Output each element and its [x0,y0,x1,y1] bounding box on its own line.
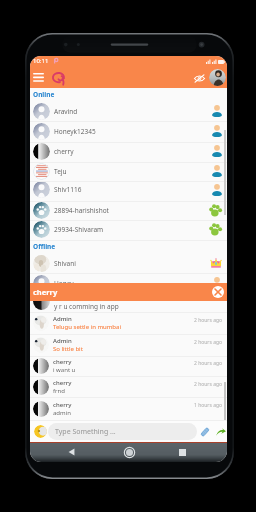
staticText: So little bit [53,345,83,353]
staticText: Online [33,90,55,99]
staticText: cherry [53,379,72,387]
staticText: 2 hours ago [194,317,223,324]
staticText: 10:11 [33,57,49,65]
staticText: Telugu settle in mumbai [53,323,121,331]
staticText: Admin [53,337,72,345]
button[interactable]: Teju [30,161,227,181]
button[interactable]: Recents [175,445,189,459]
button[interactable]: Shiv1116 [30,180,227,199]
button[interactable]: cherry [30,355,227,376]
button[interactable]: Home [122,445,136,459]
button[interactable]: Honey [30,273,227,293]
button[interactable]: Close chat [212,286,224,298]
staticText: Shivani [54,259,76,268]
staticText: Offline [33,242,56,251]
staticText: Admin [53,315,72,323]
button[interactable]: Attach file [198,424,212,440]
button[interactable]: cherry [30,397,227,420]
button[interactable]: Admin [30,312,227,334]
staticText: Aravind [54,107,78,116]
button[interactable]: Profile [209,69,226,86]
staticText: 2 hours ago [194,360,223,367]
staticText: cherry [53,358,72,366]
staticText: i want u [53,366,76,374]
staticText: admin [53,409,71,417]
button[interactable]: Search [49,69,67,87]
button[interactable]: Admin [30,334,227,355]
button[interactable]: Hide [191,69,207,87]
button[interactable]: Aravind [30,101,227,121]
button[interactable]: Send [214,424,227,440]
button[interactable]: Honeyk12345 [30,121,227,141]
button[interactable]: Type Something ... [48,423,197,440]
staticText: Shiv1116 [54,185,82,194]
button[interactable]: Shivani [30,253,227,273]
staticText: 2 hours ago [194,381,223,388]
button[interactable]: 28894-harishishot [30,200,227,220]
button[interactable]: 29934-Shivaram [30,219,227,239]
staticText: 1 hours ago [194,402,223,409]
button[interactable]: y r u comming in app [30,301,227,313]
staticText: cherry [54,147,74,156]
button[interactable]: cherry [30,376,227,397]
staticText: 2 hours ago [194,339,223,346]
staticText: Teju [54,167,67,176]
staticText: y r u comming in app [54,302,119,311]
staticText: Honey [54,279,74,288]
staticText: 29934-Shivaram [54,225,104,234]
staticText: Type Something ... [55,427,116,437]
staticText: cherry [33,287,58,297]
button[interactable]: Menu [30,68,46,86]
button[interactable]: cherry [30,141,227,161]
staticText: cherry [53,401,72,409]
staticText: 28894-harishishot [54,206,109,215]
button[interactable]: Back [64,445,78,459]
staticText: frnd [53,387,65,395]
button[interactable]: cherry [30,283,227,301]
staticText: Honeyk12345 [54,127,96,136]
